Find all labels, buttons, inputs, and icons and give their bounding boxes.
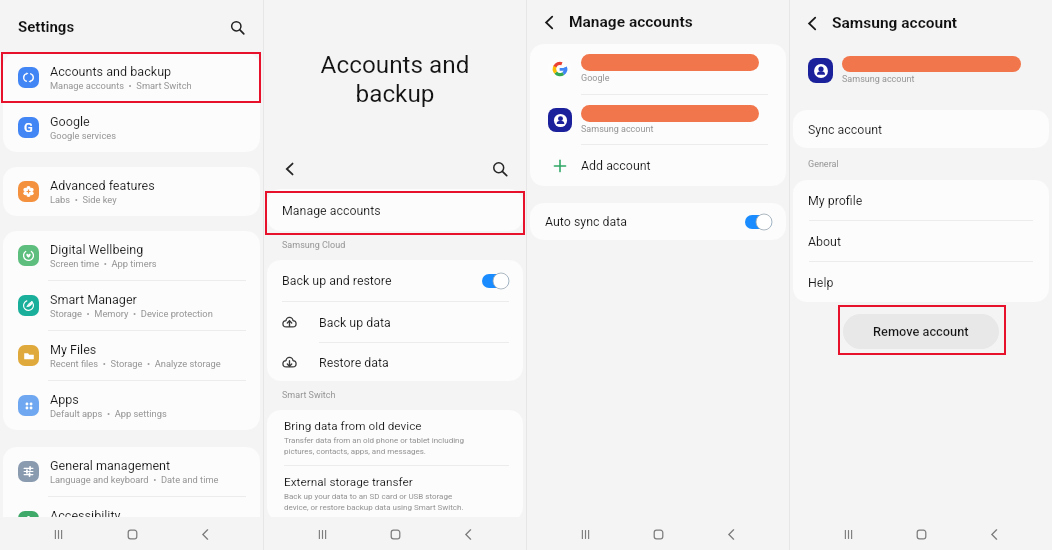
button[interactable]: Sync account [793,110,1049,148]
button[interactable]: Auto sync data [530,203,786,240]
staticText: Manage accounts • Smart Switch [50,80,192,91]
button[interactable]: Home [380,519,410,549]
button[interactable]: Apps [3,381,260,430]
button[interactable]: Back up data [281,302,523,342]
staticText: Google [581,73,610,84]
staticText: Help [808,275,834,290]
staticText: Accounts and backup [50,64,172,79]
staticText: Samsung account [832,14,958,32]
button[interactable]: Manage accounts [267,189,523,231]
staticText: Samsung account [842,74,915,85]
staticText: Screen time • App timers [50,258,157,269]
button[interactable]: Recents [570,519,600,549]
staticText: G [24,120,33,135]
button[interactable]: Bring data from old device [267,410,523,465]
staticText: Accounts and backup [272,50,518,108]
staticText: Storage • Memory • Device protection [50,308,213,319]
staticText: Smart Manager [50,292,137,307]
staticText: Apps [50,392,79,407]
staticText: Transfer data from an old phone or table… [284,436,464,456]
button[interactable]: Toggle [482,273,509,289]
button[interactable]: Back [537,10,561,34]
staticText: Accessibility [50,508,121,523]
staticText: Sync account [808,122,883,137]
button[interactable]: Accessibility [3,497,260,546]
staticText: Google [50,114,90,129]
staticText: Manage accounts [569,13,693,31]
button[interactable]: Help [793,262,1049,302]
button[interactable]: Recents [307,519,337,549]
staticText: Samsung account [581,124,654,135]
button[interactable]: Back [453,519,483,549]
button[interactable]: About [793,221,1049,261]
staticText: Digital Wellbeing [50,242,144,257]
staticText: Add account [581,158,651,173]
staticText: Advanced features [50,178,155,193]
button[interactable]: Back [979,519,1009,549]
button[interactable]: Samsung account [548,95,786,144]
staticText: Bring data from old device [284,419,422,433]
staticText: Remove account [873,324,969,339]
staticText: Settings [18,18,75,36]
staticText: Back up your data to an SD card or USB s… [284,492,464,512]
button[interactable]: Accounts and backup [3,53,260,103]
staticText: General [808,159,839,170]
button[interactable]: Back [716,519,746,549]
staticText: Manage accounts [282,203,381,218]
button[interactable]: Back [190,519,220,549]
button[interactable]: Advanced features [3,167,260,216]
staticText: Back up data [319,315,391,330]
staticText: Back up and restore [282,273,392,288]
staticText: Language and keyboard • Date and time [50,474,219,485]
button[interactable]: Recents [43,519,73,549]
staticText: Google services [50,130,116,141]
staticText: Recent files • Storage • Analyze storage [50,358,221,369]
staticText: Samsung Cloud [282,240,346,251]
staticText: Restore data [319,355,389,370]
button[interactable]: Add account [548,145,786,186]
staticText: External storage transfer [284,475,413,489]
button[interactable]: General management [3,447,260,497]
staticText: About [808,234,841,249]
staticText: My profile [808,193,863,208]
button[interactable]: Toggle [745,214,772,230]
button[interactable]: Digital Wellbeing [3,231,260,281]
staticText: Default apps • App settings [50,408,167,419]
button[interactable]: Search [225,15,249,39]
staticText: Auto sync data [545,214,628,229]
button[interactable]: Back [278,157,302,181]
button[interactable]: Restore data [281,343,523,381]
staticText: My Files [50,342,97,357]
button[interactable]: My Files [3,331,260,381]
button[interactable]: My profile [793,180,1049,220]
button[interactable]: Back [800,11,824,35]
button[interactable]: Back up and restore [282,260,509,301]
button[interactable]: Remove account [843,314,999,349]
button[interactable]: Home [117,519,147,549]
button[interactable]: Google [548,44,786,94]
staticText: Smart Switch [282,390,336,401]
staticText: Vision • Hearing [50,524,121,535]
staticText: General management [50,458,171,473]
button[interactable]: External storage transfer [267,466,523,521]
button[interactable]: Search [488,157,512,181]
button[interactable]: Smart Manager [3,281,260,331]
button[interactable]: Recents [833,519,863,549]
button[interactable]: Home [906,519,936,549]
button[interactable]: G [3,103,260,152]
staticText: Labs • Side key [50,194,117,205]
button[interactable]: Home [643,519,673,549]
